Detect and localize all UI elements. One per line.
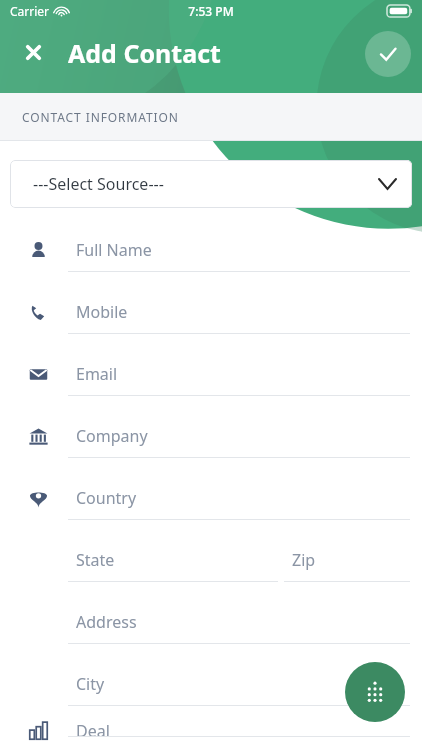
button[interactable]: Full Name bbox=[0, 223, 422, 285]
staticText: Address bbox=[76, 611, 137, 633]
staticText: Add Contact bbox=[68, 36, 221, 70]
staticText: Carrier bbox=[10, 3, 50, 19]
staticText: CONTACT INFORMATION bbox=[22, 109, 179, 125]
staticText: Country bbox=[76, 487, 137, 509]
button[interactable]: Country bbox=[0, 471, 422, 533]
button[interactable]: City bbox=[0, 657, 422, 719]
button[interactable]: Company bbox=[0, 409, 422, 471]
button[interactable]: Close bbox=[14, 33, 52, 71]
staticText: Full Name bbox=[76, 239, 152, 261]
staticText: Zip bbox=[292, 549, 316, 571]
staticText: Mobile bbox=[76, 301, 128, 323]
button[interactable]: Email bbox=[0, 347, 422, 409]
button[interactable]: Save bbox=[365, 31, 411, 77]
staticText: Deal bbox=[76, 720, 110, 742]
staticText: Company bbox=[76, 425, 148, 447]
button[interactable]: ---Select Source--- bbox=[10, 160, 412, 208]
staticText: City bbox=[76, 673, 105, 695]
button[interactable]: State bbox=[68, 533, 278, 595]
button[interactable]: Address bbox=[0, 595, 422, 657]
button[interactable]: Zip bbox=[284, 533, 410, 595]
button[interactable]: Mobile bbox=[0, 285, 422, 347]
staticText: State bbox=[76, 549, 115, 571]
staticText: 7:53 PM bbox=[188, 3, 234, 19]
staticText: ---Select Source--- bbox=[33, 173, 164, 195]
button[interactable]: More actions bbox=[345, 662, 405, 722]
staticText: Email bbox=[76, 363, 118, 385]
button[interactable]: Deal bbox=[0, 719, 422, 750]
